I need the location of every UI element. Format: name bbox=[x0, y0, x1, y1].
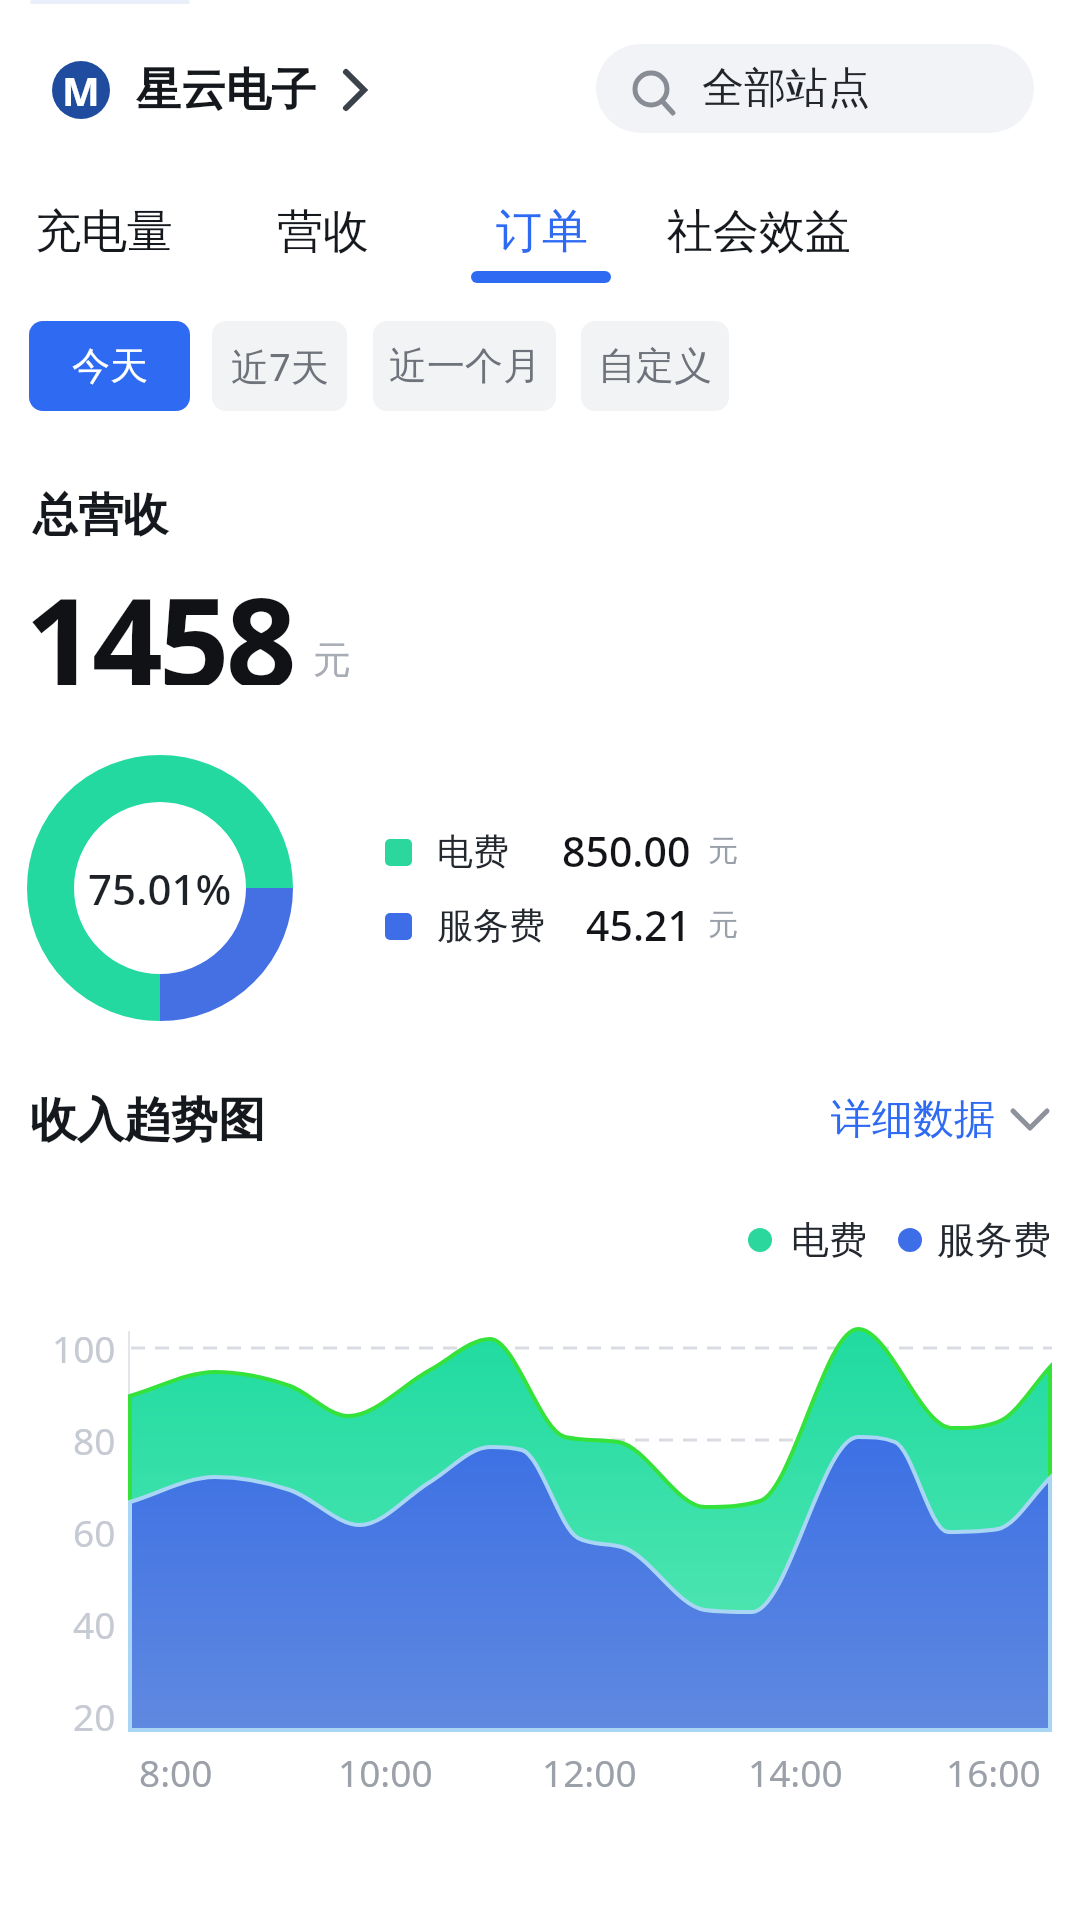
button[interactable]: 全部站点 bbox=[596, 44, 1034, 133]
staticText: 充电量 bbox=[35, 203, 173, 261]
staticText: 自定义 bbox=[598, 342, 712, 390]
button[interactable]: 近7天 bbox=[212, 321, 347, 411]
staticText: 社会效益 bbox=[667, 203, 851, 261]
staticText: 20 bbox=[73, 1691, 116, 1741]
staticText: 营收 bbox=[277, 203, 369, 261]
staticText: 10:00 bbox=[338, 1747, 433, 1797]
staticText: M bbox=[62, 63, 100, 117]
staticText: 12:00 bbox=[542, 1747, 637, 1797]
staticText: 60 bbox=[73, 1507, 116, 1557]
staticText: 850.00 bbox=[562, 823, 691, 879]
staticText: 近一个月 bbox=[389, 342, 541, 390]
staticText: 45.21 bbox=[586, 897, 691, 953]
button[interactable]: 订单 bbox=[496, 202, 588, 262]
staticText: 75.01% bbox=[88, 860, 232, 917]
staticText: 40 bbox=[73, 1599, 116, 1649]
staticText: 星云电子 bbox=[136, 62, 316, 119]
staticText: 总营收 bbox=[33, 487, 168, 544]
button[interactable]: 充电量 bbox=[35, 202, 173, 262]
staticText: 全部站点 bbox=[702, 62, 870, 115]
staticText: 今天 bbox=[72, 342, 148, 390]
staticText: 近7天 bbox=[231, 340, 329, 392]
button[interactable]: 社会效益 bbox=[667, 202, 851, 262]
button[interactable]: 自定义 bbox=[581, 321, 729, 411]
staticText: 元 bbox=[313, 636, 351, 684]
staticText: 服务费 bbox=[437, 903, 545, 948]
button[interactable]: 营收 bbox=[277, 202, 369, 262]
staticText: 1458 bbox=[25, 555, 293, 685]
button[interactable]: 近一个月 bbox=[373, 321, 556, 411]
staticText: 服务费 bbox=[937, 1216, 1051, 1264]
button[interactable]: M bbox=[52, 61, 370, 119]
staticText: 电费 bbox=[791, 1216, 867, 1264]
staticText: 8:00 bbox=[139, 1747, 213, 1797]
staticText: 元 bbox=[708, 906, 738, 944]
button[interactable]: 详细数据 bbox=[831, 1090, 1053, 1150]
staticText: 16:00 bbox=[946, 1747, 1041, 1797]
button[interactable]: 今天 bbox=[29, 321, 190, 411]
staticText: 元 bbox=[708, 832, 738, 870]
staticText: 详细数据 bbox=[831, 1094, 995, 1146]
staticText: 80 bbox=[73, 1415, 116, 1465]
staticText: 14:00 bbox=[748, 1747, 843, 1797]
staticText: 订单 bbox=[496, 203, 588, 261]
staticText: 收入趋势图 bbox=[30, 1091, 265, 1150]
staticText: 100 bbox=[52, 1323, 116, 1373]
staticText: 电费 bbox=[437, 829, 509, 874]
